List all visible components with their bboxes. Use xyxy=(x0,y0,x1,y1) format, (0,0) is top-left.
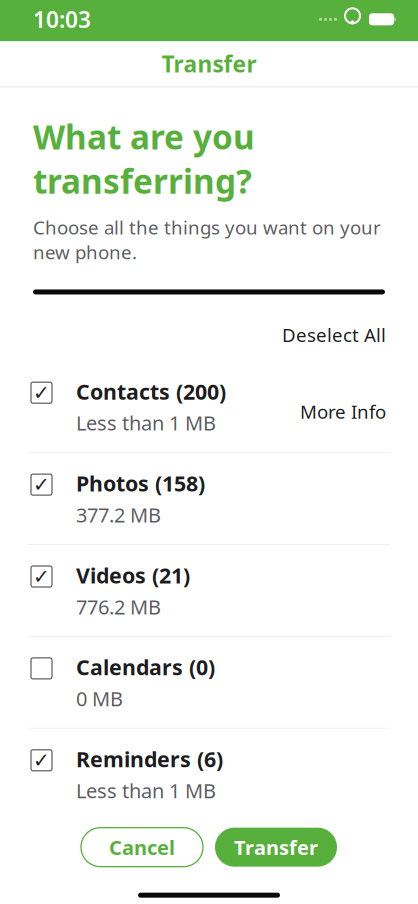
staticText: 377.2 MB xyxy=(76,501,161,528)
button[interactable]: ✓ xyxy=(0,453,418,544)
staticText: Photos (158) xyxy=(76,469,205,497)
button[interactable]: Transfer xyxy=(215,828,337,867)
staticText: Deselect All xyxy=(282,322,386,347)
staticText: ✓ xyxy=(33,473,50,496)
staticText: Contacts (200) xyxy=(76,377,226,405)
staticText: Less than 1 MB xyxy=(76,410,216,436)
staticText: Reminders (6) xyxy=(76,745,223,773)
staticText: 0 MB xyxy=(76,685,123,712)
staticText: 776.2 MB xyxy=(76,593,161,620)
staticText: What are you transferring? xyxy=(33,114,255,203)
button[interactable]: ✓ xyxy=(0,545,418,636)
staticText: ✓ xyxy=(33,749,50,772)
staticText: Less than 1 MB xyxy=(76,777,216,804)
staticText: Choose all the things you want on your n… xyxy=(33,215,381,264)
staticText: More Info xyxy=(300,399,386,424)
staticText: 10:03 xyxy=(33,4,91,34)
button[interactable]: ✓ xyxy=(0,729,418,820)
staticText: Calendars (0) xyxy=(76,653,215,681)
staticText: Transfer xyxy=(161,49,256,79)
staticText: ✓ xyxy=(33,381,50,404)
button[interactable]: Deselect All xyxy=(278,316,390,353)
staticText: Transfer xyxy=(234,834,318,860)
button[interactable]: ✓ xyxy=(0,361,418,452)
staticText: Cancel xyxy=(109,834,175,860)
button[interactable]: Cancel xyxy=(81,828,203,867)
staticText: ✓ xyxy=(33,565,50,588)
button[interactable]: Calendars (0) xyxy=(0,637,418,728)
staticText: Videos (21) xyxy=(76,561,190,589)
